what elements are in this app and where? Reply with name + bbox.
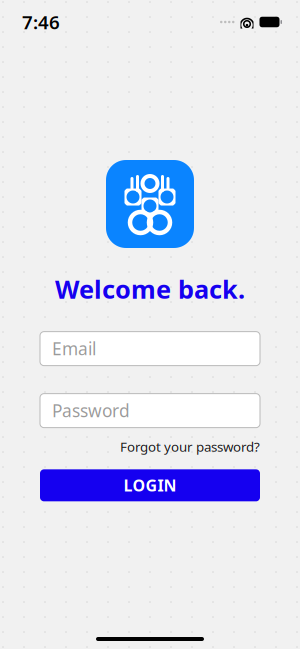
staticText: Welcome back. xyxy=(55,272,245,306)
staticText: Forgot your password? xyxy=(120,438,260,455)
button[interactable]: Email xyxy=(40,332,260,366)
button[interactable]: Password xyxy=(40,394,260,428)
staticText: Password xyxy=(52,399,130,422)
button[interactable]: LOGIN xyxy=(40,469,260,501)
staticText: 7:46 xyxy=(22,10,60,34)
button[interactable]: Forgot your password? xyxy=(120,438,260,455)
staticText: Email xyxy=(52,337,96,360)
staticText: LOGIN xyxy=(123,475,176,496)
